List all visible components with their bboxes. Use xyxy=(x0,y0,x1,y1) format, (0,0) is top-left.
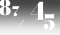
staticText: 4 xyxy=(29,0,45,29)
staticText: 8 xyxy=(0,0,11,23)
staticText: 5 xyxy=(44,8,55,35)
staticText: 7 xyxy=(12,1,20,22)
